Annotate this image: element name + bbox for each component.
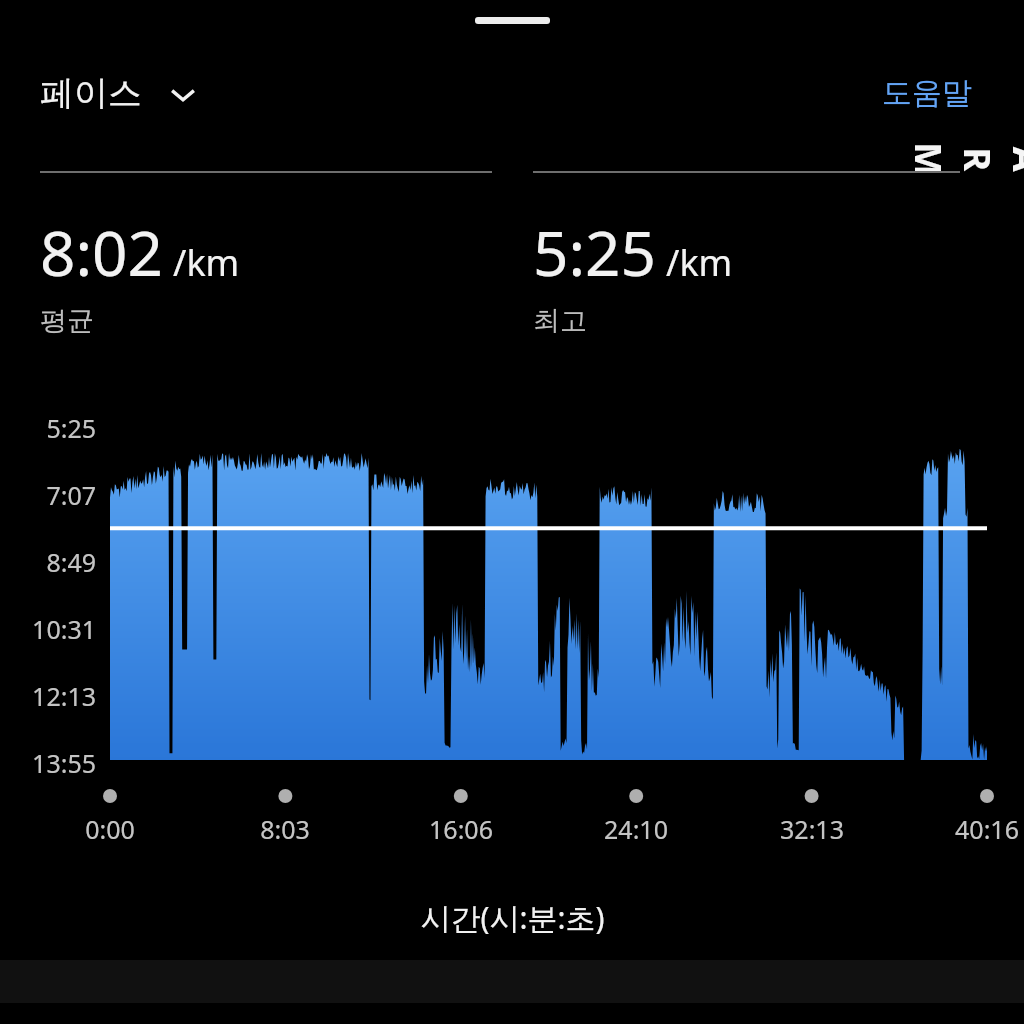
staticText: /km <box>666 238 733 287</box>
staticText: 5:25 <box>46 411 96 445</box>
button[interactable]: 페이스 <box>40 72 208 115</box>
staticText: /km <box>173 238 240 287</box>
other: Change metric <box>166 77 200 111</box>
staticText: 10:31 <box>32 612 96 646</box>
staticText: 7:07 <box>46 478 96 512</box>
staticText: 5:25 <box>533 210 657 294</box>
staticText: 13:55 <box>32 746 96 780</box>
staticText: 8:02 <box>40 210 164 294</box>
staticText: 8:49 <box>46 545 96 579</box>
staticText: GARMIN. <box>900 137 1024 183</box>
button[interactable]: 도움말 <box>878 70 976 116</box>
staticText: 평균 <box>40 304 94 338</box>
staticText: 32:13 <box>780 812 844 846</box>
staticText: 시간(시:분:초) <box>420 897 605 938</box>
staticText: 8:03 <box>260 812 310 846</box>
staticText: 12:13 <box>32 679 96 713</box>
staticText: 도움말 <box>882 74 972 112</box>
button[interactable]: 5:25 <box>0 0 1024 1024</box>
staticText: 0:00 <box>85 812 135 846</box>
staticText: 최고 <box>533 304 587 338</box>
staticText: 16:06 <box>429 812 493 846</box>
staticText: 페이스 <box>40 72 142 115</box>
staticText: 40:16 <box>955 812 1019 846</box>
staticText: 24:10 <box>604 812 668 846</box>
